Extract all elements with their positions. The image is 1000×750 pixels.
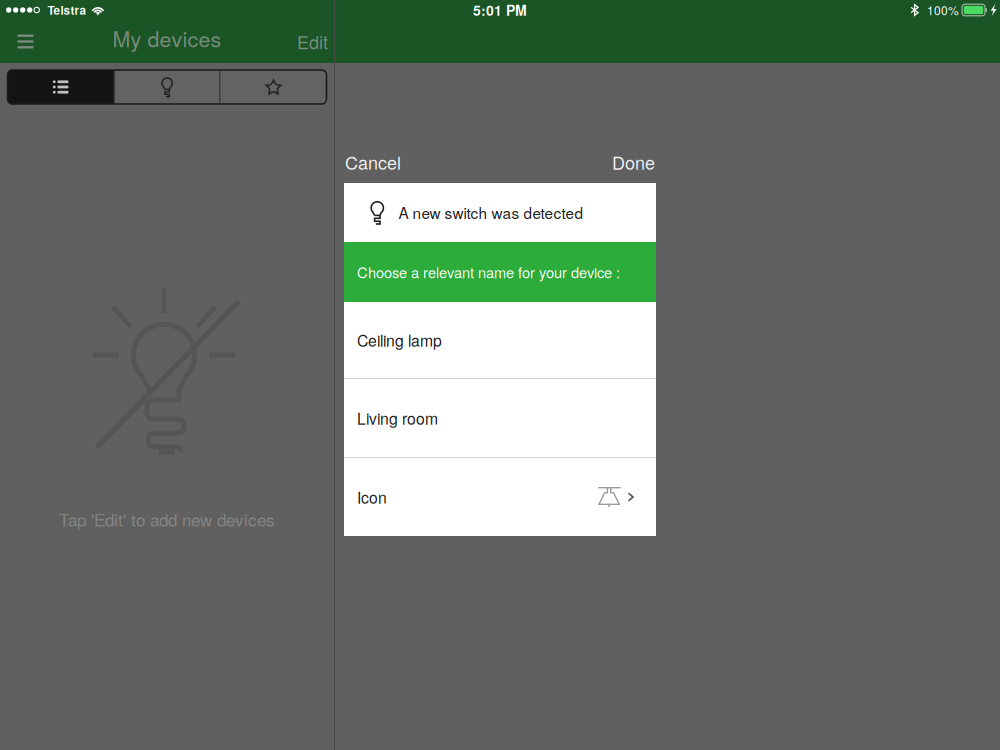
staticText: Edit xyxy=(297,29,328,54)
button[interactable]: Living room xyxy=(344,379,656,457)
staticText: My devices xyxy=(112,23,221,53)
button[interactable]: Ceiling lamp xyxy=(344,302,656,378)
button[interactable]: Menu xyxy=(0,20,47,63)
button[interactable]: Icon xyxy=(344,458,656,536)
button[interactable]: List view xyxy=(7,70,114,104)
staticText: Done xyxy=(612,149,655,175)
button[interactable]: Done xyxy=(607,148,660,176)
staticText: Ceiling lamp xyxy=(357,329,442,351)
button[interactable]: Favourites xyxy=(220,70,326,104)
staticText: Telstra xyxy=(47,2,86,18)
staticText: Living room xyxy=(357,407,438,429)
staticText: 5:01 PM xyxy=(473,0,527,20)
staticText: Choose a relevant name for your device : xyxy=(357,261,620,282)
staticText: A new switch was detected xyxy=(399,201,584,223)
button[interactable]: Edit xyxy=(283,20,334,63)
staticText: Tap 'Edit' to add new devices xyxy=(59,507,275,531)
staticText: Cancel xyxy=(345,149,401,175)
button[interactable]: Cancel xyxy=(340,148,406,176)
button[interactable]: Lights xyxy=(115,70,219,104)
staticText: Icon xyxy=(357,486,387,508)
staticText: 100% xyxy=(927,1,959,19)
